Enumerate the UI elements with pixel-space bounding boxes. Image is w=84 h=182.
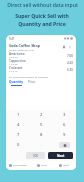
staticText: 1: [17, 112, 20, 118]
staticText: 1 x 4.20: [9, 63, 18, 66]
staticText: 9: [63, 132, 66, 138]
button[interactable]: Store: [30, 161, 53, 170]
staticText: Menu: [63, 164, 70, 167]
staticText: Fill price and quantity to continue: [9, 75, 49, 78]
staticText: 000: [33, 154, 39, 158]
button[interactable]: Americano: [6, 52, 76, 59]
button[interactable]: 1: [6, 110, 30, 120]
staticText: Croissant: [9, 66, 23, 70]
button[interactable]: 8: [30, 130, 53, 140]
staticText: Past Preview: [13, 164, 27, 167]
staticText: Direct sell without data input: [7, 2, 78, 9]
button[interactable]: 6: [53, 120, 76, 130]
button[interactable]: 3: [53, 110, 76, 120]
button[interactable]: Price: [28, 80, 36, 86]
staticText: 9:41: [9, 37, 15, 41]
button[interactable]: Croissant: [6, 66, 76, 73]
staticText: 8: [40, 132, 43, 138]
button[interactable]: Menu: [53, 161, 76, 170]
staticText: 2 x 3.50: [9, 56, 18, 59]
staticText: 6: [63, 122, 66, 128]
staticText: 5: [40, 122, 43, 128]
button[interactable]: 2: [30, 110, 53, 120]
staticText: 6.30: [67, 68, 73, 72]
button[interactable]: Profile: [61, 44, 67, 50]
button[interactable]: More options: [67, 44, 73, 50]
button[interactable]: 5: [30, 120, 53, 130]
button[interactable]: 4: [6, 120, 30, 130]
button[interactable]: 0: [6, 140, 30, 150]
staticText: 4.20: [67, 61, 73, 65]
staticText: 3 x 2.10: [9, 70, 18, 73]
button[interactable]: 000: [26, 152, 45, 159]
staticText: Online . Open till 9 PM: [9, 48, 35, 51]
staticText: Super Quick Sell with Quantity and Price: [15, 13, 69, 28]
button[interactable]: Quantity: [9, 80, 24, 86]
staticText: Soda Coffee Shop: [9, 43, 40, 48]
staticText: .: [41, 142, 43, 148]
button[interactable]: 7: [6, 130, 30, 140]
button[interactable]: Cappuccino: [6, 59, 76, 66]
staticText: 3: [63, 112, 66, 118]
button[interactable]: Past Preview: [6, 161, 30, 170]
staticText: 4: [17, 122, 20, 128]
staticText: Store: [41, 164, 47, 167]
button[interactable]: Backspace: [53, 140, 76, 150]
staticText: Cappuccino: [9, 59, 26, 63]
staticText: Quantity: [9, 80, 24, 84]
button[interactable]: Next: [48, 152, 73, 159]
staticText: Americano: [9, 52, 25, 56]
staticText: Price: [28, 80, 36, 84]
staticText: 7: [17, 132, 20, 138]
button[interactable]: 9: [53, 130, 76, 140]
staticText: Next: [57, 154, 65, 158]
staticText: 2: [40, 112, 43, 118]
staticText: 0: [17, 142, 20, 148]
staticText: 7.00: [67, 54, 73, 58]
